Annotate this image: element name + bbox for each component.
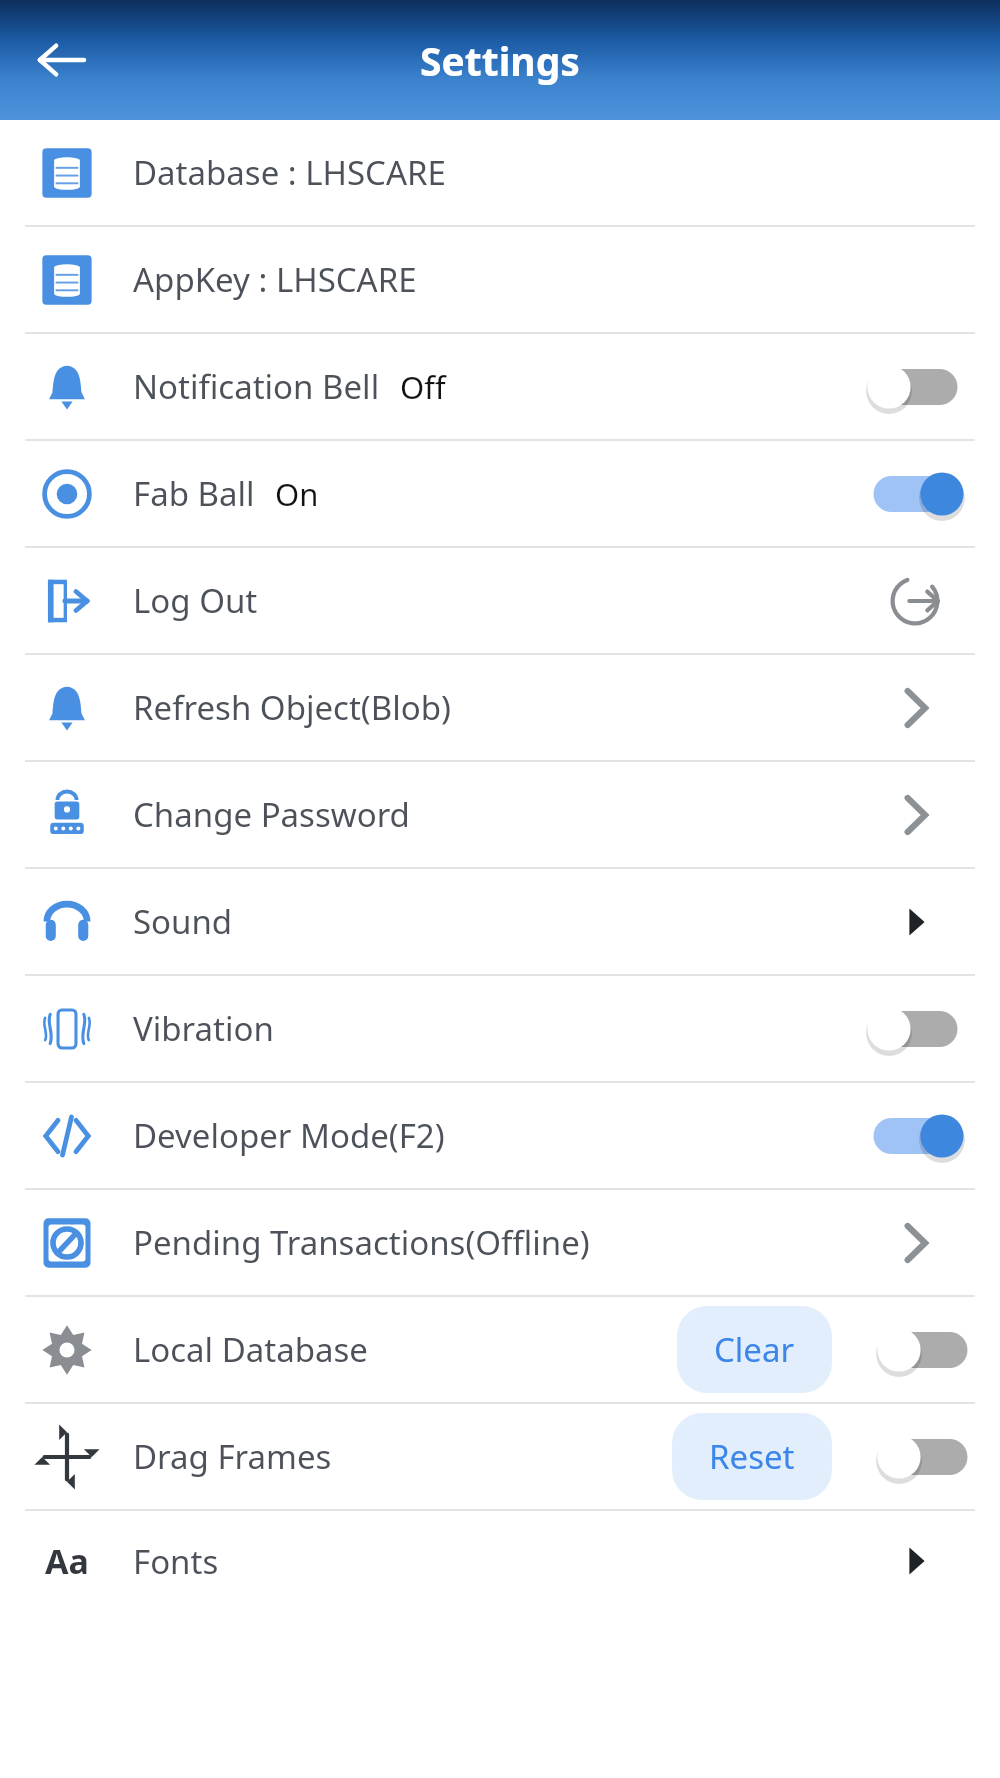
button[interactable]: Reset: [672, 1413, 832, 1500]
staticText: Local Database: [133, 1327, 368, 1372]
staticText: Reset: [709, 1434, 795, 1479]
button[interactable]: Open: [880, 780, 950, 850]
button[interactable]: Refresh Object(Blob): [0, 655, 1000, 760]
button[interactable]: Open: [880, 887, 950, 957]
staticText: Log Out: [133, 578, 258, 623]
staticText: Vibration: [133, 1006, 274, 1051]
staticText: Settings: [420, 34, 580, 87]
button[interactable]: Notification Bell: [0, 334, 1000, 439]
button[interactable]: Toggle off: [873, 1427, 978, 1487]
staticText: On: [275, 473, 319, 515]
staticText: Fonts: [133, 1539, 219, 1584]
button[interactable]: Toggle off: [863, 357, 968, 417]
button[interactable]: Toggle on: [863, 464, 968, 524]
button[interactable]: Change Password: [0, 762, 1000, 867]
staticText: Developer Mode(F2): [133, 1113, 445, 1158]
staticText: Change Password: [133, 792, 410, 837]
button[interactable]: Pending Transactions(Offline): [0, 1190, 1000, 1295]
button[interactable]: Back: [22, 21, 100, 99]
button[interactable]: Log Out: [0, 548, 1000, 653]
button[interactable]: Local Database: [0, 1297, 1000, 1402]
button[interactable]: Toggle on: [863, 1106, 968, 1166]
button[interactable]: Toggle off: [873, 1320, 978, 1380]
staticText: Pending Transactions(Offline): [133, 1220, 590, 1265]
button[interactable]: Clear: [677, 1306, 832, 1393]
button[interactable]: Database : LHSCARE: [0, 120, 1000, 225]
staticText: Database : LHSCARE: [133, 150, 446, 195]
button[interactable]: Log out: [876, 562, 954, 640]
button[interactable]: Aa: [0, 1511, 1000, 1611]
button[interactable]: Toggle off: [863, 999, 968, 1059]
button[interactable]: AppKey : LHSCARE: [0, 227, 1000, 332]
button[interactable]: Drag Frames: [0, 1404, 1000, 1509]
staticText: Sound: [133, 899, 233, 944]
staticText: Drag Frames: [133, 1434, 332, 1479]
staticText: Notification Bell: [133, 364, 380, 409]
button[interactable]: Vibration: [0, 976, 1000, 1081]
button[interactable]: Fab Ball: [0, 441, 1000, 546]
button[interactable]: Sound: [0, 869, 1000, 974]
button[interactable]: Open: [880, 673, 950, 743]
staticText: Off: [400, 366, 446, 408]
staticText: Clear: [714, 1327, 795, 1372]
staticText: Aa: [45, 1538, 89, 1584]
button[interactable]: Developer Mode(F2): [0, 1083, 1000, 1188]
staticText: Fab Ball: [133, 471, 255, 516]
staticText: AppKey : LHSCARE: [133, 257, 417, 302]
button[interactable]: Open: [880, 1526, 950, 1596]
staticText: Refresh Object(Blob): [133, 685, 451, 730]
button[interactable]: Open: [880, 1208, 950, 1278]
